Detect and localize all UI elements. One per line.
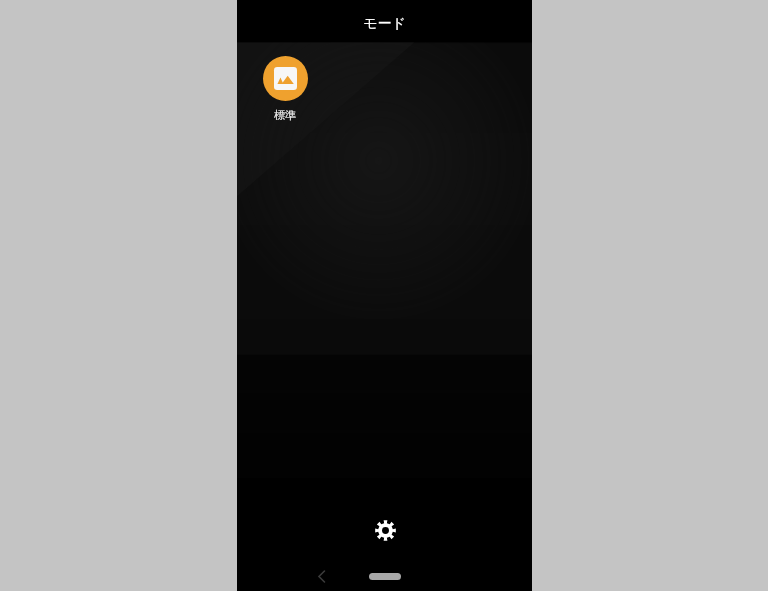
button[interactable]: Home: [363, 567, 407, 585]
staticText: 標準: [274, 108, 296, 122]
button[interactable]: Back: [305, 561, 339, 591]
button[interactable]: 標準: [251, 52, 319, 126]
button[interactable]: Settings: [365, 510, 405, 550]
staticText: モード: [363, 15, 406, 33]
